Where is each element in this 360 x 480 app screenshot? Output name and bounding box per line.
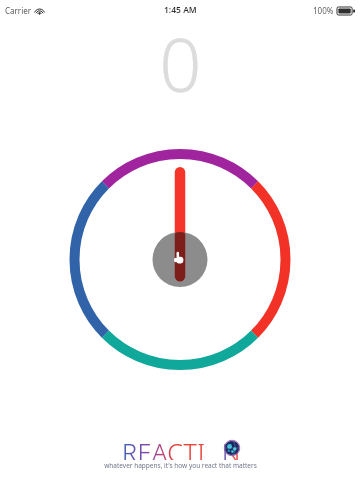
staticText: REACTI bbox=[122, 435, 206, 460]
staticText: 1:45 AM bbox=[164, 4, 197, 16]
button[interactable]: Reaction – whatever happens, it's how yo… bbox=[104, 435, 257, 470]
staticText: whatever happens, it's how you react tha… bbox=[104, 461, 257, 470]
button[interactable]: Reaction dial – tap to start bbox=[0, 0, 360, 480]
staticText: 0 bbox=[159, 13, 202, 114]
staticText: Carrier bbox=[5, 5, 32, 16]
staticText: 100% bbox=[313, 5, 334, 16]
staticText: N bbox=[222, 435, 241, 460]
